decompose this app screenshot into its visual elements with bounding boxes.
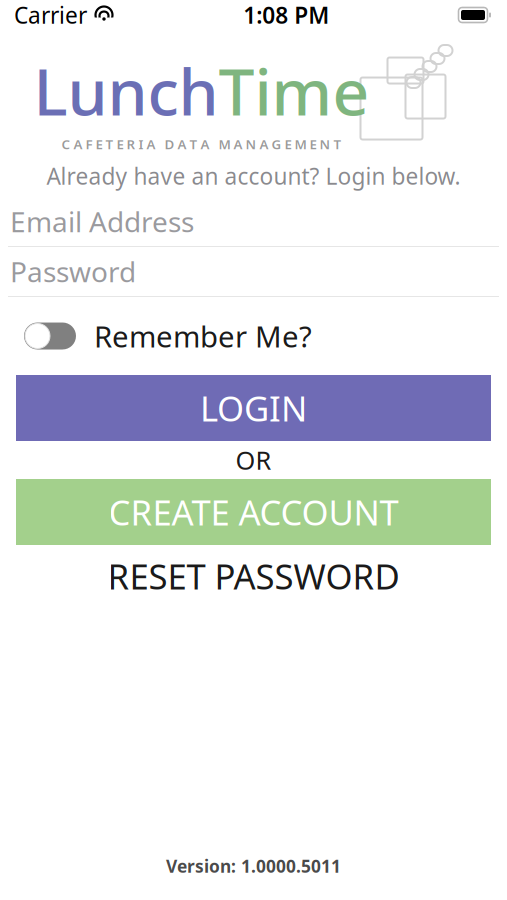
button[interactable]: CREATE ACCOUNT [16, 479, 491, 545]
staticText: Time [218, 48, 369, 133]
staticText: OR [235, 443, 271, 477]
staticText: Password [10, 253, 136, 290]
staticText: Remember Me? [94, 316, 312, 355]
button[interactable]: RESET PASSWORD [16, 545, 491, 607]
staticText: CREATE ACCOUNT [108, 489, 398, 535]
button[interactable]: Remember Me? [0, 306, 332, 365]
staticText: RESET PASSWORD [107, 553, 399, 599]
staticText: Version: 1.0000.5011 [166, 854, 341, 877]
staticText: 1:08 PM [243, 0, 329, 30]
staticText: C A F E T E R I A D A T A M A N A G E M … [61, 135, 341, 153]
staticText: Lunch [33, 48, 218, 133]
staticText: Email Address [10, 203, 194, 240]
staticText: Already have an account? Login below. [46, 161, 460, 191]
staticText: Carrier [14, 0, 87, 30]
staticText: LOGIN [200, 385, 307, 431]
button[interactable]: LOGIN [16, 375, 491, 441]
